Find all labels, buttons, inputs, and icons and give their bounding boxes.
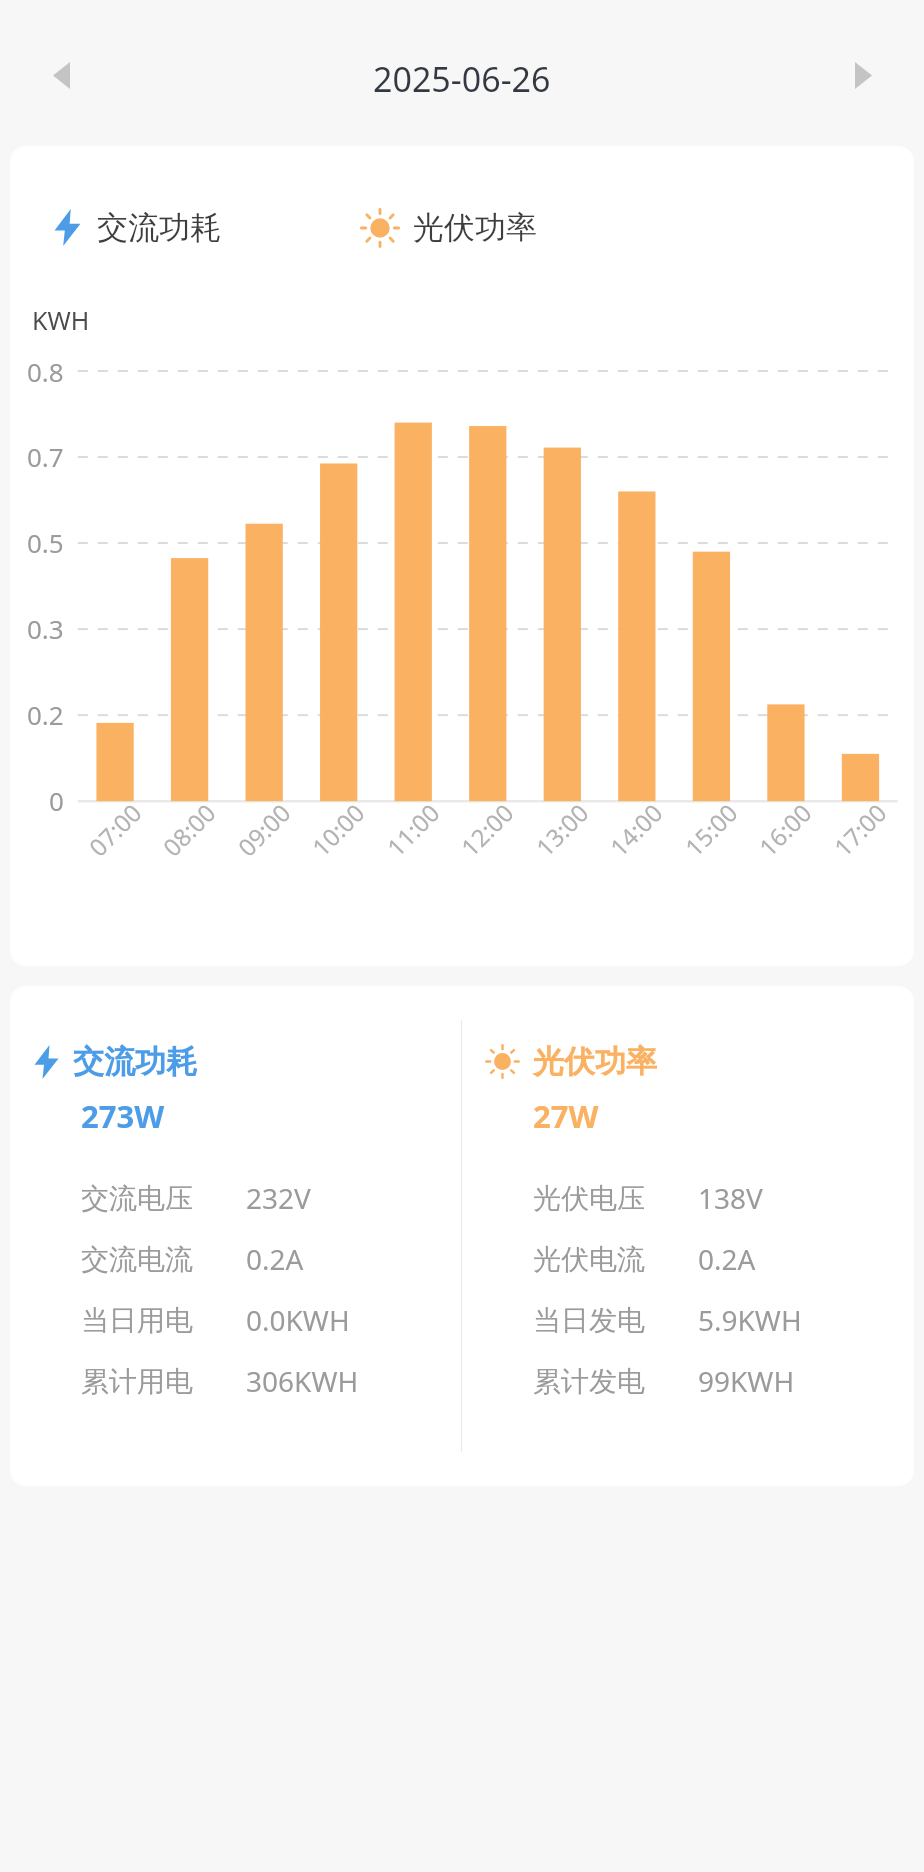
staticText: 0.0KWH — [246, 1301, 350, 1339]
staticText: 交流电流 — [81, 1242, 193, 1277]
staticText: 11:00 — [379, 796, 447, 863]
staticText: 光伏功率 — [413, 208, 537, 247]
staticText: 交流功耗 — [97, 208, 221, 247]
button[interactable]: 光伏功率 — [462, 986, 914, 1486]
staticText: 306KWH — [246, 1362, 359, 1400]
staticText: 交流功耗 — [73, 1042, 197, 1081]
staticText: 273W — [81, 1095, 165, 1137]
staticText: 14:00 — [602, 796, 670, 863]
staticText: 光伏电压 — [533, 1181, 645, 1216]
staticText: 5.9KWH — [698, 1301, 802, 1339]
staticText: 13:00 — [528, 796, 596, 863]
staticText: KWH — [32, 303, 90, 337]
staticText: 累计用电 — [81, 1364, 193, 1399]
staticText: 0.3 — [27, 611, 64, 646]
staticText: 0.2 — [27, 697, 64, 732]
staticText: 0.8 — [27, 354, 64, 389]
staticText: 2025-06-26 — [373, 56, 551, 102]
staticText: 0.2A — [246, 1240, 304, 1278]
staticText: 0 — [49, 783, 64, 818]
staticText: 17:00 — [826, 796, 894, 863]
staticText: 16:00 — [751, 796, 819, 863]
staticText: 15:00 — [677, 796, 745, 863]
staticText: 138V — [698, 1179, 763, 1217]
staticText: 10:00 — [304, 796, 372, 863]
staticText: 当日发电 — [533, 1303, 645, 1338]
staticText: 当日用电 — [81, 1303, 193, 1338]
staticText: 99KWH — [698, 1362, 795, 1400]
staticText: 07:00 — [81, 796, 149, 863]
staticText: 08:00 — [155, 796, 223, 863]
staticText: 0.5 — [27, 525, 64, 560]
staticText: 光伏电流 — [533, 1242, 645, 1277]
button[interactable]: Previous day — [36, 50, 86, 100]
staticText: 0.7 — [27, 439, 64, 474]
staticText: 09:00 — [230, 796, 298, 863]
staticText: 232V — [246, 1179, 311, 1217]
button[interactable]: 交流功耗 — [10, 986, 461, 1486]
staticText: 交流电压 — [81, 1181, 193, 1216]
staticText: 累计发电 — [533, 1364, 645, 1399]
staticText: 光伏功率 — [533, 1042, 657, 1081]
staticText: 12:00 — [453, 796, 521, 863]
button[interactable]: Next day — [838, 50, 888, 100]
staticText: 27W — [533, 1095, 599, 1137]
staticText: 0.2A — [698, 1240, 756, 1278]
